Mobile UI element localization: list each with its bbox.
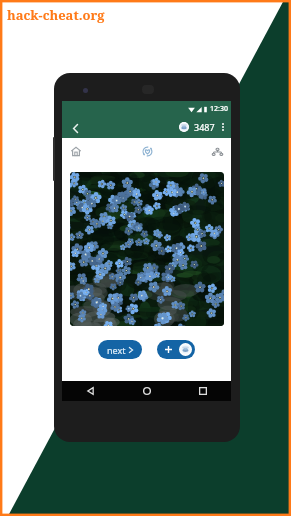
button[interactable]: next	[98, 340, 142, 359]
button[interactable]: Add coins	[157, 340, 195, 359]
button[interactable]: Back	[62, 381, 119, 401]
button[interactable]: Network	[204, 138, 230, 165]
button[interactable]: Home	[63, 138, 89, 165]
button[interactable]: Favorites	[134, 138, 160, 165]
button[interactable]: More options	[219, 120, 227, 134]
button[interactable]: Recents	[175, 381, 231, 401]
button[interactable]: Home	[119, 381, 175, 401]
staticText: 12:30	[210, 104, 228, 114]
button[interactable]: Back	[68, 121, 82, 135]
button[interactable]: Coins	[179, 122, 189, 132]
staticText: hack-cheat.org	[7, 6, 105, 24]
staticText: next	[107, 344, 126, 356]
staticText: 3487	[194, 121, 215, 133]
